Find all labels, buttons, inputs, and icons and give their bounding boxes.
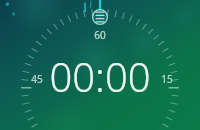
button[interactable]: 60: [0, 0, 200, 130]
staticText: 15: [161, 72, 173, 86]
staticText: 00:00: [49, 49, 151, 103]
staticText: 45: [31, 72, 43, 86]
button[interactable]: 00:00: [0, 0, 200, 130]
staticText: 60: [94, 28, 106, 42]
